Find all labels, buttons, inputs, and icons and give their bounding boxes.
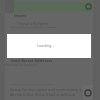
staticText: Loading...: [37, 43, 55, 48]
button[interactable]: Choose a Recipient: [17, 21, 49, 26]
staticText: Recipient:: [14, 14, 27, 18]
button[interactable]: Send: [83, 88, 93, 98]
button[interactable]: [14, 2, 94, 12]
button[interactable]: Add a caption (optional): [4, 63, 38, 67]
button[interactable]: Close: [84, 2, 93, 11]
staticText: Spuse for two years and committing a: [10, 87, 82, 92]
staticText: Some Recent Addresses: [11, 58, 53, 63]
staticText: Bitcoin trillion dollar fraud or with ju…: [10, 92, 76, 97]
